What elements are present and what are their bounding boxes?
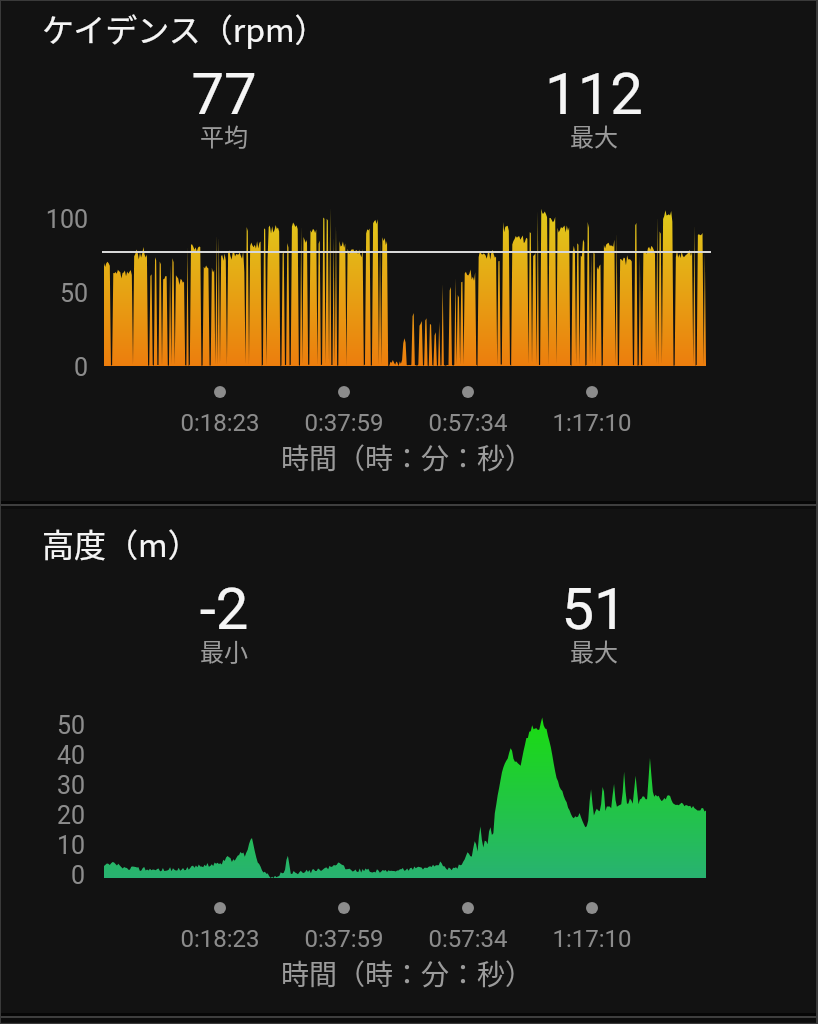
staticText: 50	[13, 279, 88, 308]
staticText: 平均	[124, 118, 324, 153]
staticText: 0:18:23	[160, 409, 280, 437]
staticText: 112	[494, 60, 694, 128]
staticText: 0:37:59	[284, 925, 404, 953]
staticText: 51	[494, 575, 694, 643]
staticText: 100	[13, 205, 88, 234]
staticText: 40	[10, 741, 85, 770]
staticText: 時間（時：分：秒）	[207, 953, 607, 994]
staticText: ケイデンス（rpm）	[42, 5, 327, 51]
staticText: 0:18:23	[160, 925, 280, 953]
staticText: 77	[124, 60, 324, 128]
staticText: 0:57:34	[408, 925, 528, 953]
staticText: 1:17:10	[532, 409, 652, 437]
staticText: 30	[10, 771, 85, 800]
staticText: 0:37:59	[284, 409, 404, 437]
staticText: 0:57:34	[408, 409, 528, 437]
staticText: 10	[10, 831, 85, 860]
staticText: 時間（時：分：秒）	[207, 437, 607, 478]
staticText: 0	[10, 861, 85, 890]
staticText: 高度（m）	[42, 520, 200, 566]
staticText: 50	[10, 711, 85, 740]
staticText: 最小	[124, 633, 324, 668]
staticText: 20	[10, 801, 85, 830]
staticText: 最大	[494, 118, 694, 153]
staticText: 最大	[494, 633, 694, 668]
staticText: -2	[124, 575, 324, 643]
staticText: 0	[13, 353, 88, 382]
staticText: 1:17:10	[532, 925, 652, 953]
